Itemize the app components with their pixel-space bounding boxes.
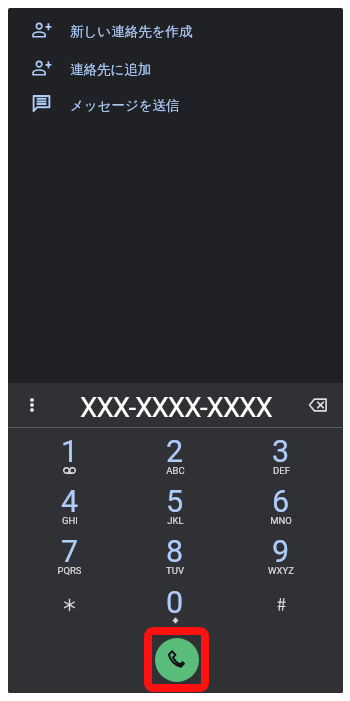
staticText: GHI — [62, 515, 78, 526]
button[interactable]: 4 — [17, 484, 122, 534]
button[interactable]: More options — [14, 387, 50, 423]
button[interactable]: メッセージを送信 — [8, 87, 343, 124]
button[interactable]: 5 — [122, 484, 228, 534]
button[interactable]: 9 — [228, 534, 334, 584]
button[interactable]: 1 — [17, 434, 122, 484]
staticText: 新しい連絡先を作成 — [70, 23, 193, 40]
button[interactable]: 3 — [228, 434, 334, 484]
button[interactable]: Backspace — [300, 387, 336, 423]
staticText: MNO — [270, 515, 292, 526]
staticText: XXX-XXXX-XXXX — [80, 391, 272, 423]
staticText: 8 — [166, 534, 184, 564]
button[interactable]: Call — [155, 638, 199, 682]
staticText: JKL — [167, 515, 184, 526]
button[interactable]: 0 — [122, 585, 228, 635]
staticText: 6 — [272, 484, 290, 514]
staticText: 2 — [166, 434, 184, 464]
button[interactable]: 8 — [122, 534, 228, 584]
staticText: 0 — [166, 585, 184, 615]
staticText: 7 — [61, 534, 79, 564]
staticText: 4 — [61, 484, 79, 514]
staticText: 連絡先に追加 — [70, 61, 152, 78]
button[interactable]: 連絡先に追加 — [8, 51, 343, 88]
staticText: メッセージを送信 — [70, 97, 180, 114]
staticText: 3 — [272, 434, 290, 464]
button[interactable] — [228, 585, 334, 635]
staticText: TUV — [166, 565, 184, 576]
staticText: 1 — [61, 434, 79, 464]
button[interactable]: 6 — [228, 484, 334, 534]
staticText: ABC — [166, 465, 185, 476]
staticText: 5 — [166, 484, 184, 514]
button[interactable] — [17, 585, 122, 635]
staticText: 9 — [272, 534, 290, 564]
button[interactable]: 7 — [17, 534, 122, 584]
button[interactable]: 新しい連絡先を作成 — [8, 13, 343, 50]
staticText: DEF — [273, 465, 290, 476]
button[interactable]: 2 — [122, 434, 228, 484]
staticText: PQRS — [57, 565, 82, 576]
staticText: WXYZ — [268, 565, 294, 576]
